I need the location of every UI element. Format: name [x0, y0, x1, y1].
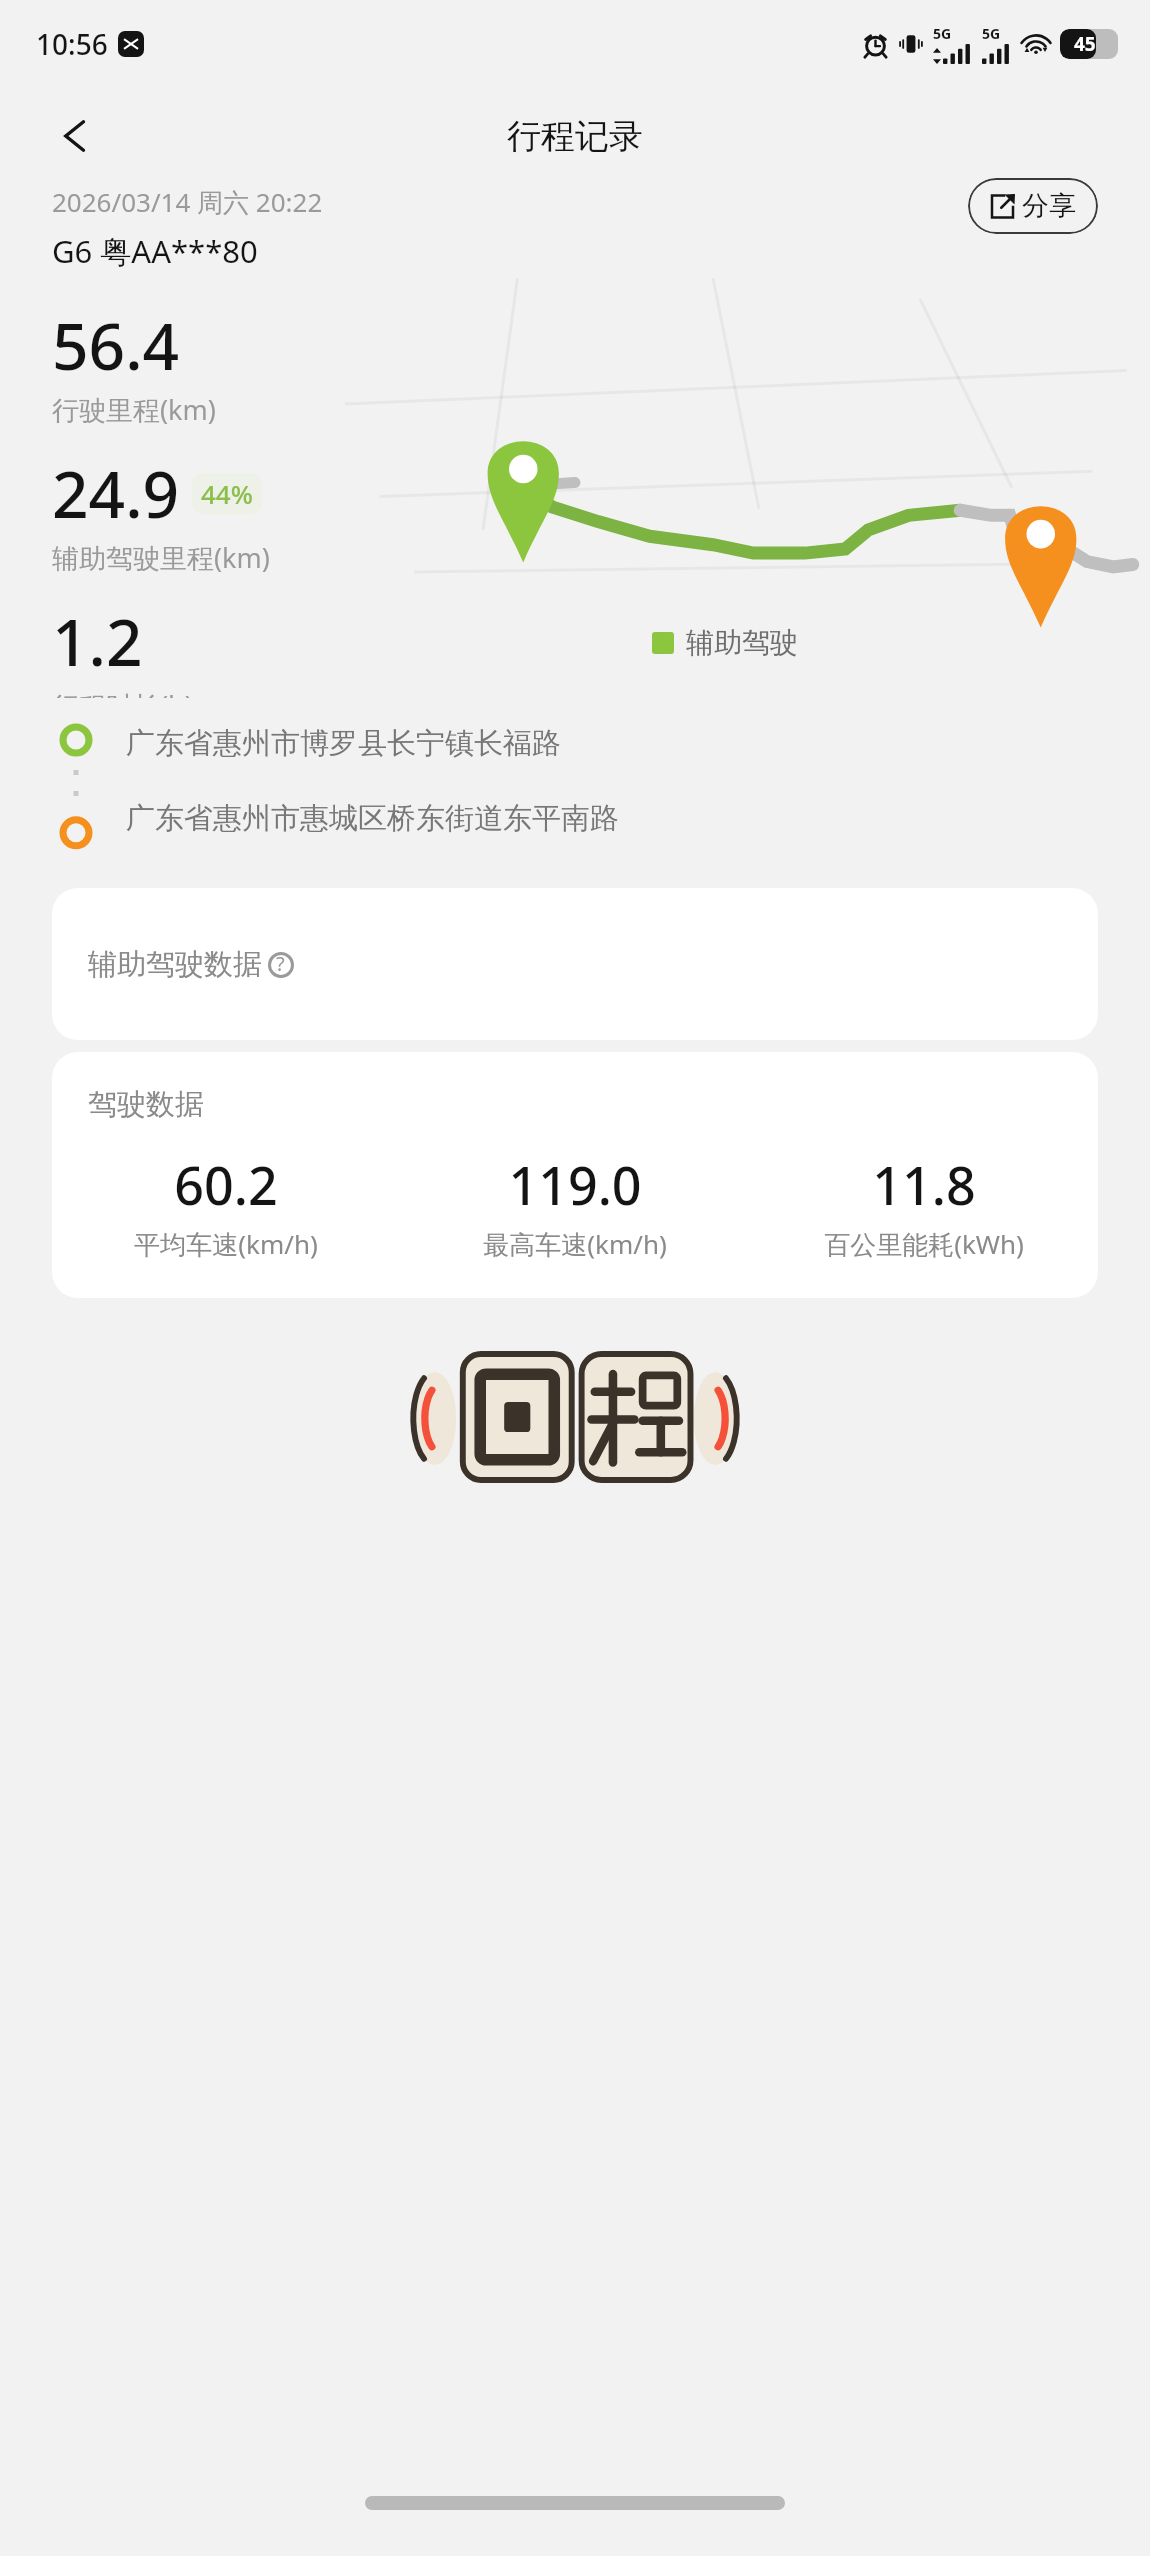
staticText: G6 粤AA***80: [52, 230, 258, 272]
staticText: 分享: [1022, 189, 1076, 223]
staticText: 辅助驾驶: [686, 625, 798, 660]
staticText: 广东省惠州市惠城区桥东街道东平南路: [126, 800, 619, 837]
staticText: 2026/03/14 周六 20:22: [52, 184, 323, 220]
staticText: 辅助驾驶数据: [88, 946, 262, 983]
staticText: 百公里能耗(kWh): [824, 1226, 1024, 1262]
button[interactable]: 驾驶数据: [52, 1052, 1098, 1298]
staticText: 5G: [933, 24, 952, 43]
staticText: 45: [1074, 31, 1096, 57]
staticText: 1.2: [52, 598, 143, 685]
staticText: 辅助驾驶里程(km): [52, 539, 270, 576]
staticText: 平均车速(km/h): [134, 1226, 318, 1262]
staticText: 5G: [982, 24, 1001, 43]
staticText: 行程记录: [507, 115, 643, 158]
staticText: 119.0: [508, 1149, 642, 1220]
staticText: 10:56: [36, 25, 108, 63]
staticText: 44%: [201, 476, 253, 511]
button[interactable]: 辅助驾驶数据: [52, 888, 1098, 1040]
staticText: 11.8: [872, 1149, 976, 1220]
staticText: 广东省惠州市博罗县长宁镇长福路: [126, 725, 561, 762]
staticText: 驾驶数据: [88, 1086, 204, 1123]
staticText: 60.2: [174, 1149, 278, 1220]
staticText: ?: [276, 950, 285, 977]
staticText: 56.4: [52, 302, 180, 389]
staticText: 24.9: [52, 450, 180, 537]
button[interactable]: 分享: [968, 178, 1098, 234]
staticText: 行程时长(h): [52, 687, 193, 698]
staticText: 行驶里程(km): [52, 391, 216, 428]
staticText: 最高车速(km/h): [483, 1226, 667, 1262]
button[interactable]: Back: [46, 106, 106, 166]
